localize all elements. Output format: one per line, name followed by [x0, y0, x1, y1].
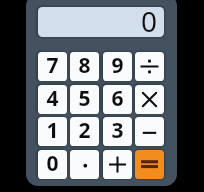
button[interactable]: 9: [103, 52, 132, 81]
button[interactable]: 3: [103, 117, 132, 146]
button[interactable]: Subtract: [135, 117, 164, 146]
staticText: 6: [111, 85, 124, 113]
staticText: 0: [46, 150, 59, 178]
staticText: 5: [78, 85, 91, 113]
button[interactable]: Add: [103, 150, 132, 179]
staticText: 7: [46, 52, 59, 80]
button[interactable]: Equals: [135, 150, 164, 179]
button[interactable]: Multiply: [135, 85, 164, 114]
button[interactable]: Decimal point: [70, 150, 99, 179]
staticText: 9: [111, 52, 124, 80]
button[interactable]: Divide: [135, 52, 164, 81]
staticText: 1: [46, 117, 59, 145]
staticText: 8: [78, 52, 91, 80]
staticText: 4: [46, 85, 59, 113]
staticText: 3: [111, 117, 124, 145]
staticText: 0: [141, 7, 158, 32]
button[interactable]: 1: [38, 117, 67, 146]
button[interactable]: 8: [70, 52, 99, 81]
button[interactable]: 4: [38, 85, 67, 114]
staticText: 2: [78, 117, 91, 145]
button[interactable]: 5: [70, 85, 99, 114]
button[interactable]: 0: [38, 150, 67, 179]
button[interactable]: 7: [38, 52, 67, 81]
button[interactable]: 6: [103, 85, 132, 114]
button[interactable]: 2: [70, 117, 99, 146]
